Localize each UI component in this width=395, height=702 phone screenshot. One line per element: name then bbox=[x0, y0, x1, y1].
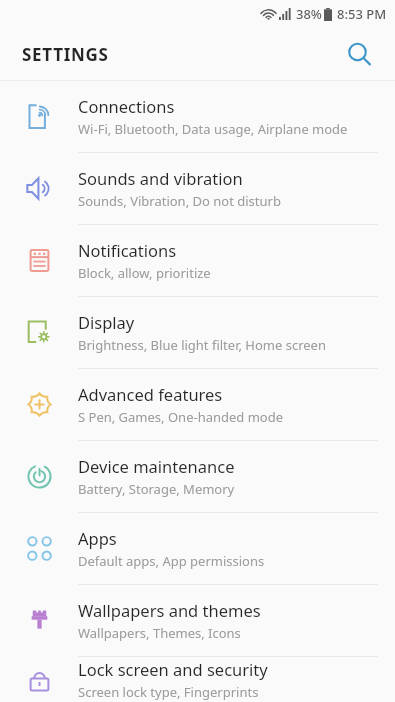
staticText: Apps bbox=[78, 527, 117, 549]
staticText: Sounds and vibration bbox=[78, 167, 243, 189]
staticText: Wi-Fi, Bluetooth, Data usage, Airplane m… bbox=[78, 120, 348, 138]
staticText: Connections bbox=[78, 95, 175, 117]
button[interactable]: Search bbox=[337, 32, 381, 76]
button[interactable]: Lock screen and security bbox=[0, 657, 395, 702]
button[interactable]: Connections bbox=[0, 81, 395, 152]
staticText: Screen lock type, Fingerprints bbox=[78, 683, 259, 701]
button[interactable]: Advanced features bbox=[0, 369, 395, 440]
staticText: 38% bbox=[296, 5, 322, 23]
staticText: Brightness, Blue light filter, Home scre… bbox=[78, 336, 326, 354]
staticText: Battery, Storage, Memory bbox=[78, 480, 235, 498]
staticText: Sounds, Vibration, Do not disturb bbox=[78, 192, 281, 210]
button[interactable]: Notifications bbox=[0, 225, 395, 296]
staticText: Wallpapers and themes bbox=[78, 599, 261, 621]
button[interactable]: Sounds and vibration bbox=[0, 153, 395, 224]
staticText: Display bbox=[78, 311, 135, 333]
staticText: Default apps, App permissions bbox=[78, 552, 265, 570]
staticText: Advanced features bbox=[78, 383, 223, 405]
staticText: Notifications bbox=[78, 239, 177, 261]
button[interactable]: Display bbox=[0, 297, 395, 368]
staticText: 8:53 PM bbox=[337, 5, 387, 23]
staticText: Lock screen and security bbox=[78, 658, 268, 680]
staticText: S Pen, Games, One-handed mode bbox=[78, 408, 284, 426]
button[interactable]: Device maintenance bbox=[0, 441, 395, 512]
staticText: SETTINGS bbox=[22, 43, 109, 66]
staticText: Wallpapers, Themes, Icons bbox=[78, 624, 241, 642]
staticText: Block, allow, prioritize bbox=[78, 264, 211, 282]
button[interactable]: Wallpapers and themes bbox=[0, 585, 395, 656]
button[interactable]: Apps bbox=[0, 513, 395, 584]
staticText: Device maintenance bbox=[78, 455, 235, 477]
